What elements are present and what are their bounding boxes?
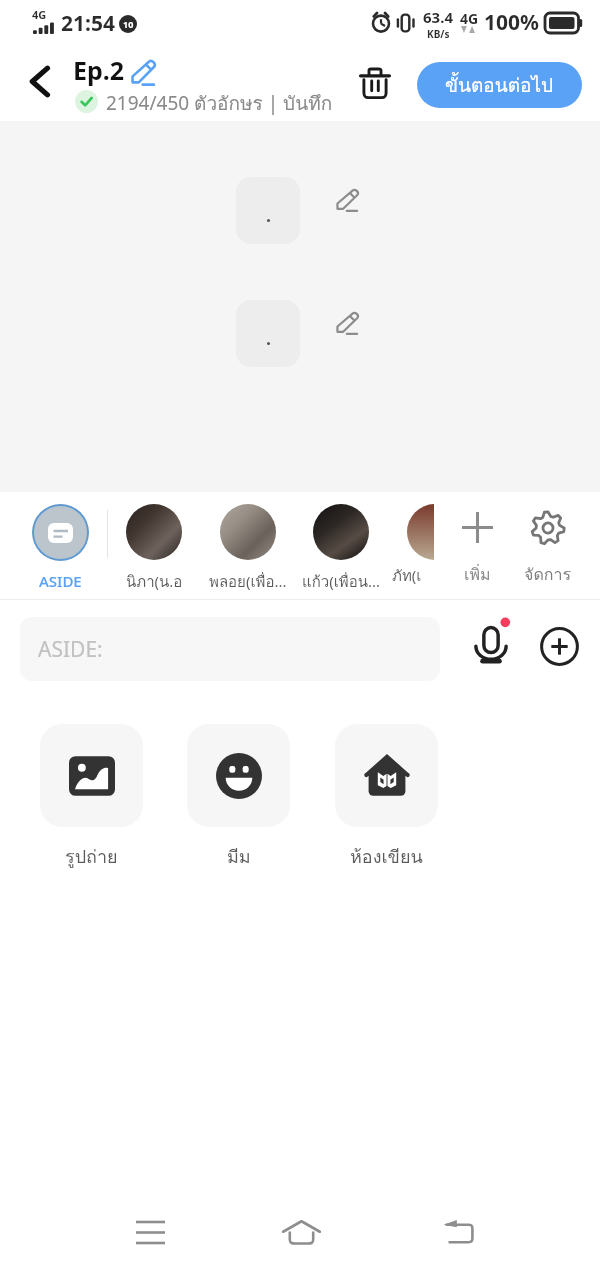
staticText: 4G bbox=[460, 9, 479, 28]
staticText: 100% bbox=[484, 8, 539, 37]
button[interactable]: Image placeholder bbox=[236, 300, 300, 367]
staticText: นิภา(น.อ bbox=[126, 570, 183, 592]
button[interactable]: Delete bbox=[352, 60, 398, 106]
button[interactable]: พลอย(เพื่อ... bbox=[201, 492, 295, 592]
staticText: KB/s bbox=[427, 27, 450, 41]
button[interactable]: Edit bbox=[336, 312, 360, 335]
staticText: 21:54 bbox=[61, 9, 115, 38]
button[interactable]: Back bbox=[15, 57, 63, 105]
button[interactable]: Manage bbox=[515, 498, 581, 564]
button[interactable]: Recent apps bbox=[110, 1197, 190, 1267]
button[interactable]: รูปถ่าย bbox=[40, 724, 143, 871]
button[interactable]: Home bbox=[261, 1197, 341, 1267]
button[interactable]: มีม bbox=[187, 724, 290, 871]
button[interactable]: Back bbox=[418, 1197, 498, 1267]
staticText: ห้องเขียน bbox=[350, 842, 423, 871]
button[interactable]: Voice record bbox=[468, 617, 514, 667]
button[interactable]: Edit bbox=[336, 189, 360, 212]
button[interactable]: ขั้นตอนต่อไป bbox=[417, 62, 582, 108]
button[interactable]: นิภา(น.อ bbox=[107, 492, 201, 592]
staticText: จัดการ bbox=[524, 562, 572, 587]
staticText: ASIDE bbox=[39, 571, 82, 591]
staticText: ภัท(เ bbox=[392, 564, 422, 588]
button[interactable]: ห้องเขียน bbox=[335, 724, 438, 871]
button[interactable]: ASIDE bbox=[20, 492, 101, 592]
button[interactable]: Add attachment bbox=[538, 625, 580, 667]
staticText: 2194/450 ตัวอักษร | บันทึก bbox=[106, 88, 333, 118]
button[interactable] bbox=[407, 504, 434, 560]
staticText: พลอย(เพื่อ... bbox=[209, 570, 287, 592]
staticText: มีม bbox=[227, 842, 251, 871]
button[interactable]: Add member bbox=[447, 498, 507, 558]
staticText: Ep.2 bbox=[73, 53, 125, 87]
button[interactable]: ASIDE: bbox=[20, 617, 440, 681]
staticText: ขั้นตอนต่อไป bbox=[445, 70, 554, 100]
staticText: 10 bbox=[123, 18, 134, 30]
staticText: 4G bbox=[32, 7, 47, 22]
button[interactable]: Edit title bbox=[131, 60, 157, 86]
button[interactable]: แก้ว(เพื่อน... bbox=[294, 492, 388, 592]
staticText: รูปถ่าย bbox=[65, 842, 118, 871]
staticText: 63.4 bbox=[423, 7, 453, 27]
staticText: เพิ่ม bbox=[464, 562, 491, 587]
staticText: แก้ว(เพื่อน... bbox=[302, 570, 381, 592]
staticText: ASIDE: bbox=[38, 635, 103, 664]
button[interactable]: Image placeholder bbox=[236, 177, 300, 244]
